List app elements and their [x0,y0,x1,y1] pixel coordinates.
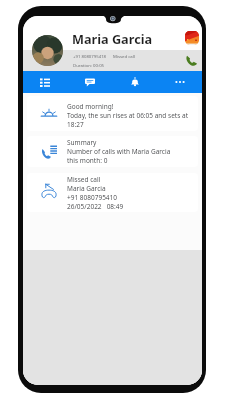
staticText: Summary [67,138,97,147]
staticText: +91 8080795410 [67,193,118,202]
button[interactable]: Messages [67,71,112,93]
button[interactable]: Contact photo [32,35,63,66]
staticText: Missed call [113,53,135,59]
staticText: 18:27 [67,120,84,129]
staticText: Good morning! [67,102,114,111]
staticText: Duration: 00:05 [73,62,105,68]
button[interactable]: Notifications [112,71,157,93]
button[interactable]: Good morning! [27,96,198,131]
staticText: Maria Garcia [67,184,106,193]
button[interactable]: Call [185,54,198,67]
staticText: +91 8080795418 [73,53,107,59]
staticText: 26/05/2022 08:49 [67,202,124,211]
staticText: Number of calls with Maria Garcia [67,147,171,156]
button[interactable]: More [157,71,202,93]
button[interactable]: App [185,31,199,45]
staticText: this month: 0 [67,156,108,165]
staticText: Missed call [67,175,101,184]
staticText: Today, the sun rises at 06:05 and sets a… [67,111,188,120]
button[interactable]: Details [23,71,67,93]
button[interactable]: Summary [27,136,198,167]
button[interactable]: Missed call [27,173,198,212]
staticText: Maria Garcia [72,30,153,47]
